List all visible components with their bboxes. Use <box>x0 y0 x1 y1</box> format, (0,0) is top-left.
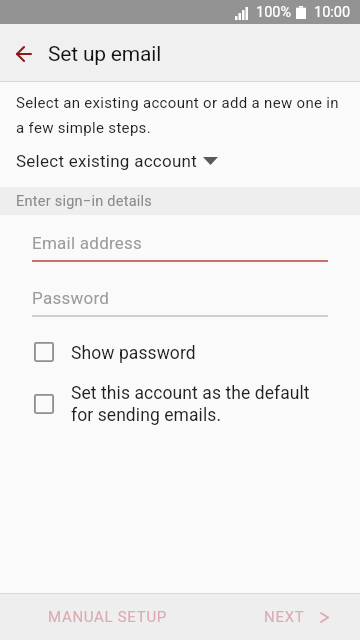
staticText: Set up email <box>48 42 162 67</box>
staticText: Enter sign−in details <box>16 193 153 210</box>
button[interactable]: Select existing account <box>0 145 360 177</box>
staticText: Set this account as the default for send… <box>71 383 310 425</box>
button[interactable]: NEXT <box>215 594 360 640</box>
staticText: 100% <box>256 4 292 21</box>
staticText: Email address <box>32 233 143 253</box>
staticText: Show password <box>71 343 196 364</box>
staticText: MANUAL SETUP <box>48 608 167 626</box>
staticText: 10:00 <box>314 4 351 21</box>
staticText: Select an existing account or add a new … <box>16 94 341 136</box>
button[interactable]: Show password <box>0 341 360 362</box>
staticText: Select existing account <box>16 151 197 171</box>
button[interactable]: MANUAL SETUP <box>0 594 215 640</box>
button[interactable]: Set this account as the default for send… <box>0 362 360 425</box>
button[interactable]: Back <box>0 30 48 78</box>
staticText: NEXT <box>264 608 305 626</box>
staticText: Password <box>32 288 110 308</box>
